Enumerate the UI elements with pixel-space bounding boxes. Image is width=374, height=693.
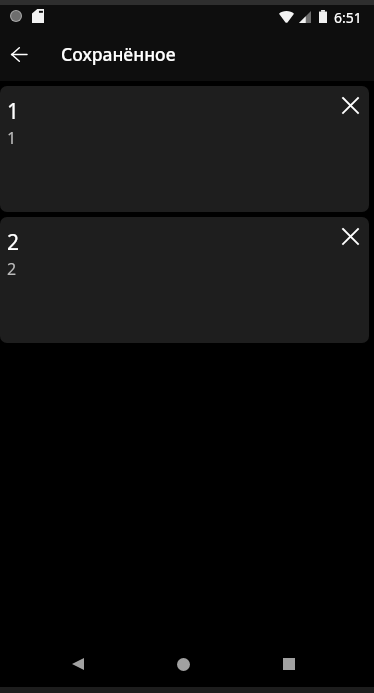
button[interactable]: 2 — [0, 217, 369, 343]
staticText: 6:51 — [334, 8, 362, 27]
button[interactable]: 1 — [0, 86, 369, 212]
staticText: 2 — [7, 258, 17, 280]
staticText: 2 — [7, 228, 20, 257]
button[interactable]: Remove — [332, 218, 368, 254]
button[interactable]: Home — [150, 641, 216, 687]
staticText: 1 — [7, 127, 17, 149]
button[interactable]: Recents — [256, 641, 322, 687]
staticText: 1 — [7, 97, 20, 126]
staticText: Сохранённое — [61, 42, 176, 66]
button[interactable]: Back — [2, 37, 36, 71]
button[interactable]: Back — [45, 641, 110, 687]
button[interactable]: Remove — [332, 87, 368, 123]
